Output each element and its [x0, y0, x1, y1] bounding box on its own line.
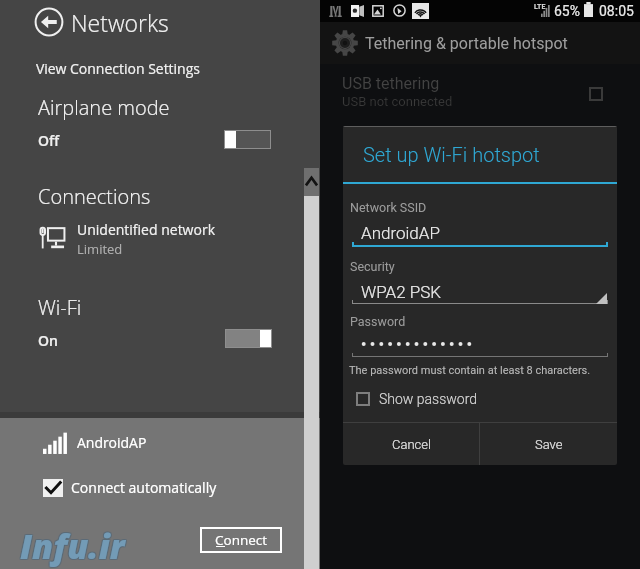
- staticText: Tethering & portable hotspot: [365, 34, 568, 53]
- staticText: USB tethering: [342, 74, 440, 93]
- staticText: Off: [38, 131, 60, 150]
- button[interactable]: [225, 329, 272, 348]
- staticText: Connect automatically: [71, 478, 217, 497]
- button[interactable]: Connect automatically: [43, 475, 217, 500]
- staticText: USB not connected: [342, 94, 453, 109]
- staticText: Cancel: [392, 437, 431, 452]
- button[interactable]: Unidentified network: [38, 220, 278, 254]
- staticText: Infu.ir: [21, 524, 126, 569]
- staticText: Unidentified network: [77, 220, 215, 239]
- staticText: Set up Wi-Fi hotspot: [363, 143, 540, 166]
- staticText: Save: [535, 437, 563, 452]
- button[interactable]: Save: [480, 423, 617, 465]
- staticText: Infu.ir: [20, 524, 125, 569]
- staticText: Infu.ir: [20, 523, 125, 569]
- staticText: Networks: [71, 7, 169, 37]
- button[interactable]: Show password: [356, 386, 496, 412]
- button[interactable]: Cancel: [343, 423, 479, 465]
- button[interactable]: [224, 130, 271, 149]
- staticText: Connections: [38, 183, 151, 210]
- button[interactable]: View Connection Settings: [36, 59, 201, 78]
- staticText: Infu.ir: [19, 522, 124, 568]
- staticText: Infu.ir: [21, 522, 126, 568]
- button[interactable]: AndroidAP: [43, 428, 253, 456]
- staticText: 08:05: [599, 3, 634, 19]
- other: Back: [34, 7, 64, 37]
- staticText: Password: [350, 314, 406, 329]
- button[interactable]: Connect: [200, 527, 282, 553]
- staticText: LTE: [534, 3, 546, 11]
- button[interactable]: Settings: [332, 22, 627, 64]
- staticText: Wi-Fi: [38, 294, 82, 321]
- staticText: Network SSID: [350, 200, 427, 215]
- other: Settings: [332, 30, 358, 56]
- staticText: Infu.ir: [19, 524, 124, 569]
- staticText: AndroidAP: [77, 433, 147, 452]
- staticText: On: [38, 331, 58, 350]
- button[interactable]: Back: [34, 7, 169, 37]
- staticText: Airplane mode: [38, 94, 170, 121]
- staticText: Connect: [215, 531, 268, 549]
- staticText: WPA2 PSK: [361, 282, 442, 302]
- staticText: Show password: [379, 391, 478, 407]
- staticText: 65%: [554, 3, 580, 19]
- staticText: Infu.ir: [20, 522, 125, 568]
- staticText: Infu.ir: [19, 523, 124, 569]
- staticText: AndroidAP: [361, 223, 440, 243]
- staticText: Limited: [77, 240, 123, 254]
- staticText: Infu.ir: [21, 523, 126, 569]
- staticText: Security: [350, 259, 395, 274]
- staticText: The password must contain at least 8 cha…: [349, 364, 591, 377]
